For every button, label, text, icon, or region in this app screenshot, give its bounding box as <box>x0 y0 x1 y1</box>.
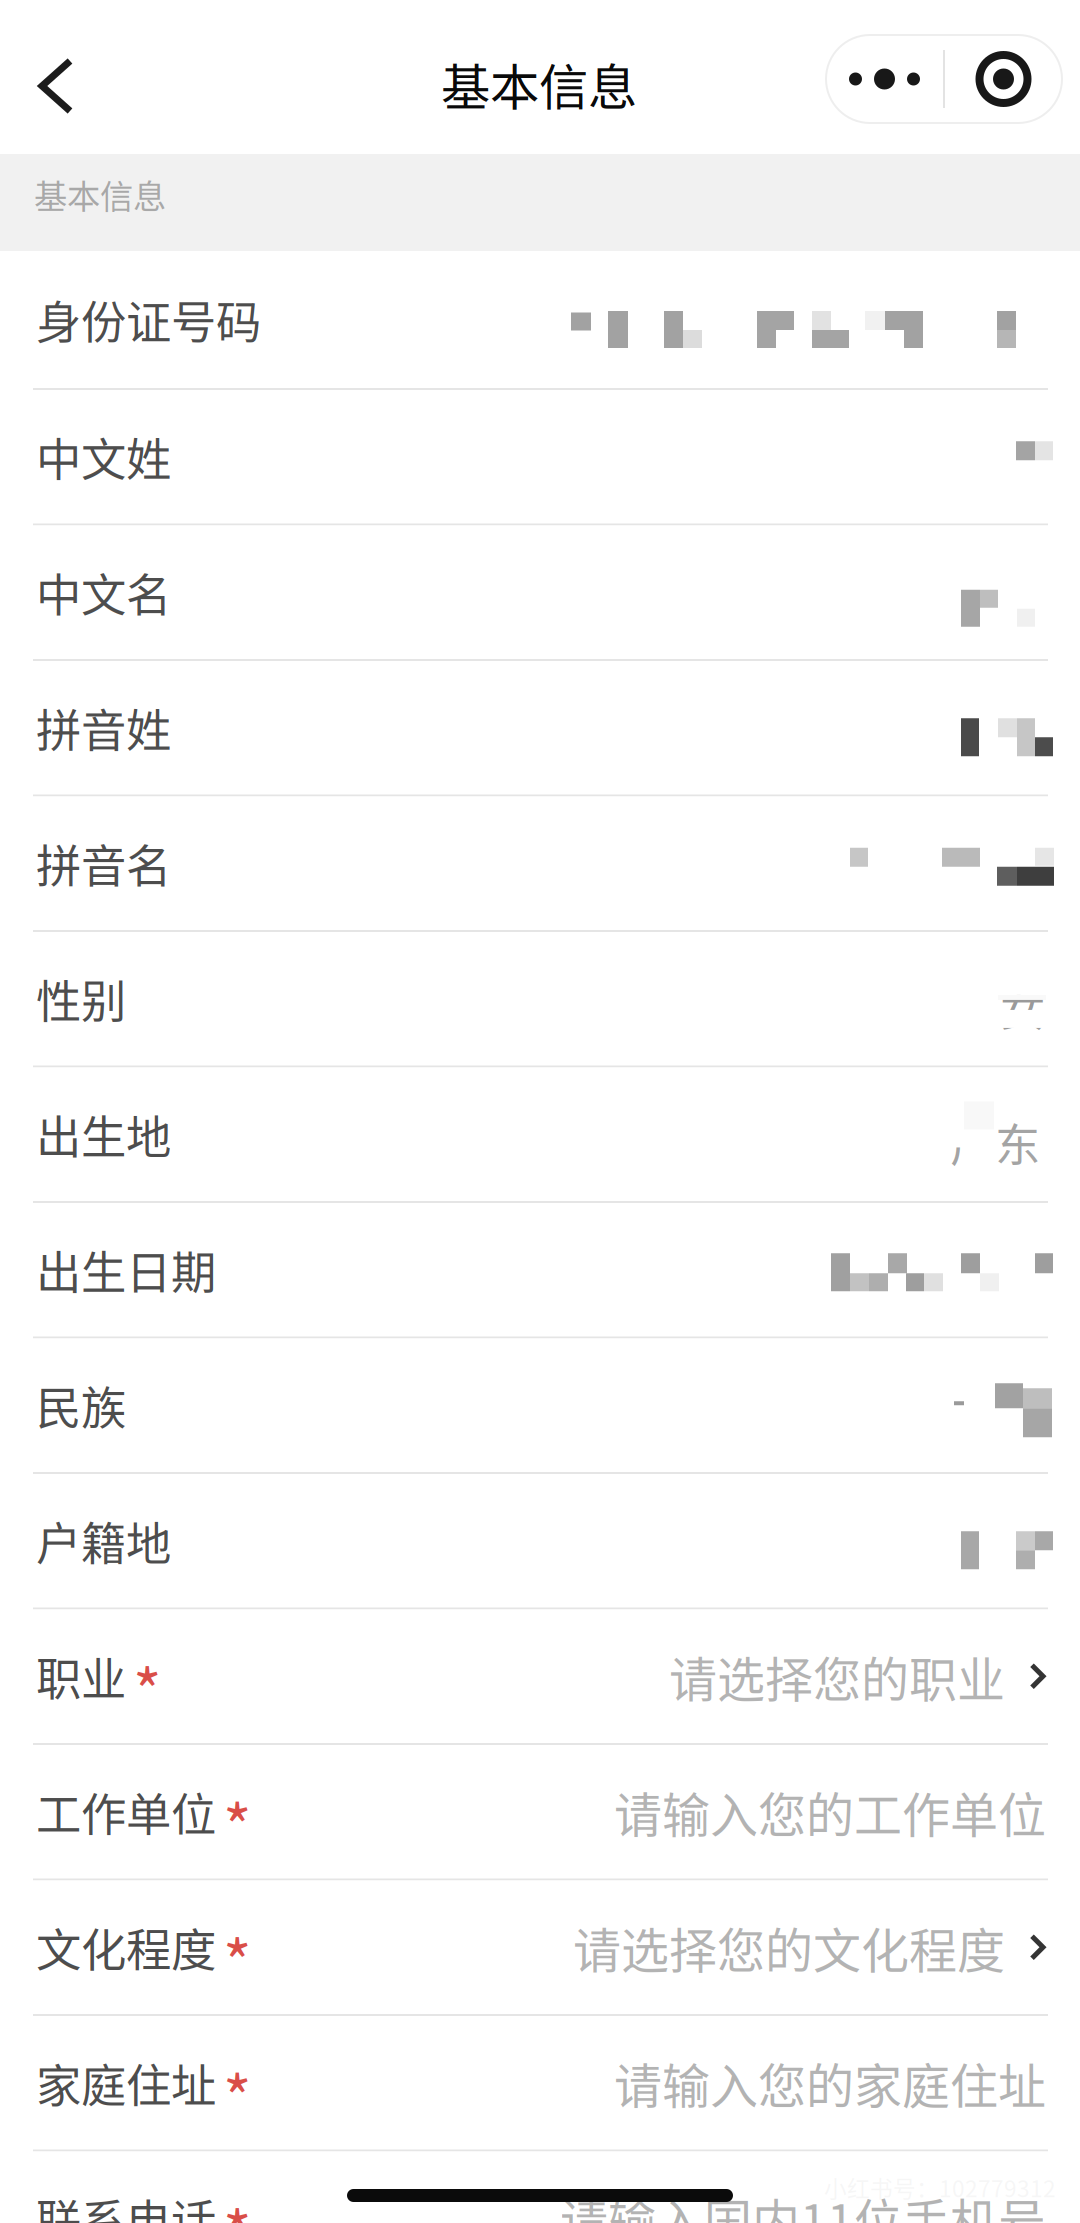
staticText: 拼音名 <box>36 830 171 896</box>
staticText: 文化程度 <box>36 1914 216 1980</box>
button[interactable]: 中文名 <box>0 525 1080 659</box>
staticText: * <box>223 1779 252 1868</box>
button[interactable]: 拼音名 <box>0 796 1080 930</box>
button[interactable]: 身份证号码 <box>0 251 1080 388</box>
button[interactable]: 民族 <box>0 1338 1080 1472</box>
staticText: * <box>133 1644 162 1733</box>
staticText: * <box>223 2050 252 2139</box>
staticText: 请输入您的家庭住址 <box>614 2048 1046 2117</box>
button[interactable]: 中文姓 <box>0 390 1080 523</box>
button[interactable]: 出生日期 <box>0 1203 1080 1336</box>
button[interactable]: 户籍地 <box>0 1474 1080 1607</box>
button[interactable]: Back <box>6 26 106 146</box>
staticText: 中文姓 <box>36 424 171 489</box>
staticText: 性别 <box>36 966 126 1031</box>
button[interactable]: 拼音姓 <box>0 661 1080 794</box>
staticText: 身份证号码 <box>36 287 261 352</box>
button[interactable]: 出生地 <box>0 1067 1080 1201</box>
button[interactable]: 家庭住址 <box>0 2016 1080 2149</box>
button[interactable]: 联系电话 <box>0 2151 1080 2223</box>
staticText: 工作单位 <box>36 1779 216 1844</box>
button[interactable]: 性别 <box>0 932 1080 1065</box>
staticText: 女 <box>1000 974 1045 1039</box>
staticText: 民族 <box>36 1372 126 1438</box>
staticText: 请输入您的工作单位 <box>614 1777 1046 1846</box>
staticText: 基本信息 <box>441 48 637 119</box>
staticText: * <box>223 2186 252 2223</box>
staticText: * <box>223 1915 252 2004</box>
staticText: 中文名 <box>36 559 171 625</box>
staticText: 基本信息 <box>34 170 166 218</box>
staticText: 出生日期 <box>36 1237 216 1302</box>
staticText: 家庭住址 <box>36 2050 216 2115</box>
staticText: 联系电话 <box>36 2185 216 2223</box>
button[interactable]: 文化程度 <box>0 1880 1080 2014</box>
staticText: 广东 <box>950 1109 1040 1175</box>
button[interactable]: 职业 <box>0 1609 1080 1743</box>
staticText: 请输入国内11位手机号 <box>560 2183 1046 2223</box>
button[interactable]: 工作单位 <box>0 1745 1080 1878</box>
staticText: 小红书号：102779312 <box>824 2171 1056 2204</box>
staticText: 请选择您的文化程度 <box>573 1912 1005 1982</box>
staticText: 职业 <box>36 1643 126 1709</box>
button[interactable]: More options <box>826 35 1062 123</box>
staticText: 拼音姓 <box>36 695 171 760</box>
staticText: 出生地 <box>36 1101 171 1167</box>
staticText: 户籍地 <box>36 1508 171 1573</box>
staticText: 请选择您的职业 <box>669 1641 1005 1711</box>
